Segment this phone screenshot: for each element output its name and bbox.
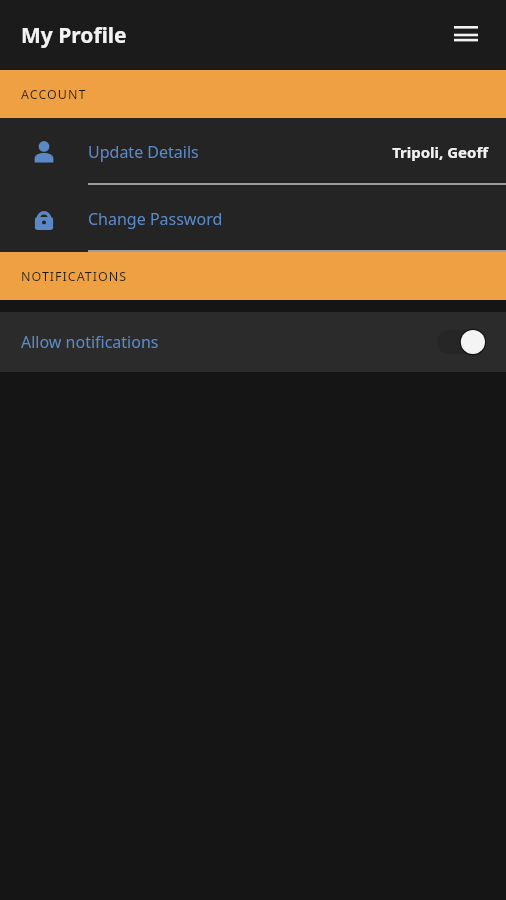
staticText: NOTIFICATIONS	[21, 268, 128, 285]
staticText: Tripoli, Geoff	[207, 142, 488, 162]
staticText: Allow notifications	[21, 331, 159, 353]
button[interactable]: Open navigation menu	[444, 13, 488, 57]
staticText: My Profile	[21, 21, 127, 50]
staticText: Update Details	[88, 141, 199, 163]
button[interactable]: Allow notifications	[0, 312, 506, 372]
button[interactable]: Update Details	[0, 118, 506, 185]
staticText: ACCOUNT	[21, 86, 87, 103]
button[interactable]: Change Password	[0, 185, 506, 252]
staticText: Change Password	[88, 208, 223, 230]
